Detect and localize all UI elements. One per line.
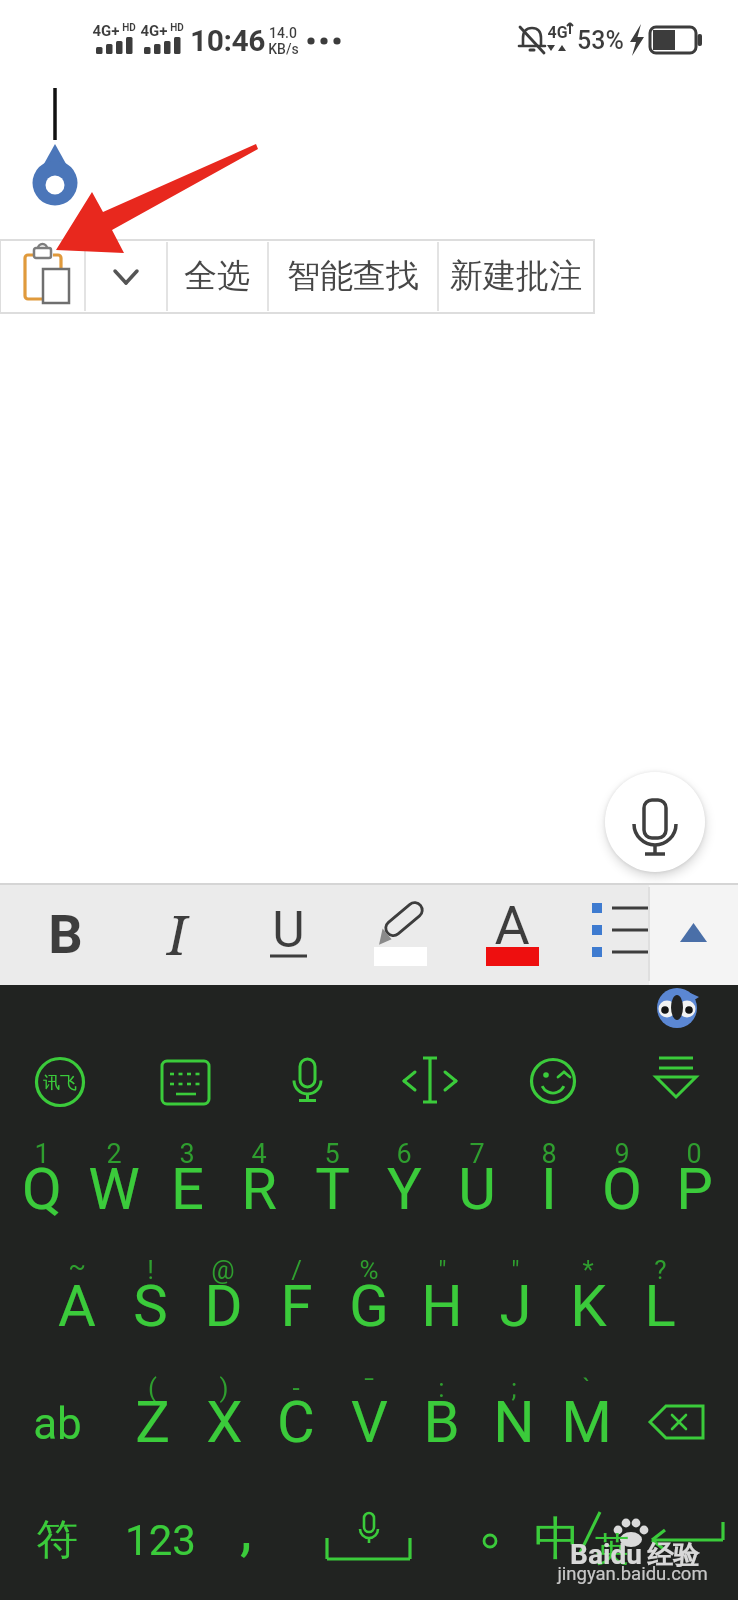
staticText: 5 <box>324 1138 340 1170</box>
staticText: ~ <box>68 1251 86 1281</box>
staticText: P <box>676 1155 713 1223</box>
button[interactable]: R <box>109 1129 409 1249</box>
staticText: HD <box>122 22 136 34</box>
staticText: ( <box>148 1373 157 1403</box>
staticText: E <box>171 1155 204 1223</box>
button[interactable]: I <box>399 1129 699 1249</box>
staticText: 符 <box>36 1514 78 1567</box>
button[interactable]: 中 <box>407 1479 707 1599</box>
staticText: 6 <box>396 1138 412 1170</box>
button[interactable]: E <box>37 1129 337 1249</box>
button[interactable]: N <box>364 1362 664 1482</box>
staticText: L <box>644 1272 676 1340</box>
staticText: 英 <box>595 1528 629 1571</box>
button[interactable]: L <box>510 1246 738 1366</box>
staticText: @ <box>211 1255 235 1285</box>
staticText: F <box>280 1272 313 1340</box>
staticText: 8 <box>541 1138 557 1170</box>
button[interactable] <box>268 240 438 313</box>
button[interactable]: M <box>436 1362 736 1482</box>
button[interactable]: V <box>219 1362 519 1482</box>
button[interactable] <box>85 240 167 313</box>
staticText: ; <box>511 1373 517 1403</box>
button[interactable] <box>651 889 735 979</box>
staticText: % <box>359 1255 379 1285</box>
button[interactable]: 符 <box>0 1480 207 1600</box>
staticText: 4 <box>251 1138 267 1170</box>
staticText: V <box>351 1388 388 1456</box>
staticText: I <box>167 897 187 971</box>
button[interactable]: T <box>182 1129 482 1249</box>
staticText: B <box>423 1388 460 1456</box>
button[interactable]: Z <box>2 1362 302 1482</box>
staticText: A <box>58 1272 96 1340</box>
staticText: J <box>499 1272 532 1340</box>
staticText: W <box>88 1155 140 1223</box>
staticText: - <box>292 1373 300 1403</box>
staticText: Y <box>387 1155 422 1223</box>
button[interactable]: ab <box>0 1364 207 1484</box>
button[interactable]: , <box>96 1468 396 1588</box>
staticText: O <box>602 1155 642 1223</box>
staticText: ? <box>654 1255 667 1285</box>
staticText: 讯飞 <box>43 1072 77 1093</box>
staticText: 123 <box>125 1516 196 1565</box>
button[interactable]: G <box>219 1246 519 1366</box>
staticText: 53% <box>577 26 624 55</box>
staticText: : <box>438 1373 445 1403</box>
button[interactable]: Y <box>254 1129 554 1249</box>
staticText: 3 <box>179 1138 195 1170</box>
button[interactable]: Q <box>0 1129 192 1249</box>
button[interactable] <box>0 240 85 313</box>
staticText: ˉ <box>363 1373 375 1403</box>
button[interactable]: U <box>327 1129 627 1249</box>
button[interactable]: C <box>146 1362 446 1482</box>
staticText: 9 <box>614 1138 630 1170</box>
button[interactable]: P <box>544 1129 738 1249</box>
staticText: 经验 <box>647 1539 699 1572</box>
button[interactable]: D <box>73 1246 373 1366</box>
staticText: A <box>494 894 530 957</box>
staticText: ! <box>147 1255 154 1285</box>
button[interactable]: W <box>0 1129 264 1249</box>
button[interactable]: X <box>74 1362 374 1482</box>
staticText: / <box>291 1255 302 1285</box>
staticText: N <box>493 1388 535 1456</box>
button[interactable]: H <box>292 1246 592 1366</box>
button[interactable] <box>438 240 594 313</box>
staticText: H <box>421 1272 463 1340</box>
staticText: HD <box>170 22 184 34</box>
button[interactable]: K <box>438 1246 738 1366</box>
button[interactable] <box>167 240 268 313</box>
staticText: 1 <box>34 1138 50 1170</box>
staticText: 全选 <box>184 255 250 297</box>
button[interactable] <box>233 889 341 979</box>
staticText: X <box>206 1388 243 1456</box>
staticText: 4G+ <box>92 22 120 40</box>
staticText: 4G <box>547 23 568 42</box>
button[interactable] <box>9 889 117 979</box>
button[interactable]: J <box>365 1246 665 1366</box>
button[interactable]: A <box>0 1246 227 1366</box>
button[interactable] <box>605 772 705 872</box>
staticText: ` <box>582 1373 591 1403</box>
button[interactable] <box>569 889 677 979</box>
button[interactable]: S <box>0 1246 300 1366</box>
staticText: Q <box>22 1155 62 1223</box>
staticText: " <box>438 1255 447 1285</box>
button[interactable]: F <box>146 1246 446 1366</box>
staticText: Z <box>135 1388 170 1456</box>
button[interactable] <box>457 889 565 979</box>
staticText: K <box>570 1272 607 1340</box>
staticText: " <box>511 1255 520 1285</box>
staticText: U <box>458 1155 496 1223</box>
button[interactable]: 123 <box>10 1480 310 1600</box>
staticText: jingyan.baidu.com <box>557 1563 708 1585</box>
staticText: KB/s <box>268 41 299 57</box>
button[interactable] <box>121 889 229 979</box>
staticText: ) <box>219 1373 229 1403</box>
button[interactable] <box>345 889 453 979</box>
button[interactable]: B <box>291 1362 591 1482</box>
staticText: T <box>315 1155 350 1223</box>
button[interactable]: O <box>472 1129 738 1249</box>
